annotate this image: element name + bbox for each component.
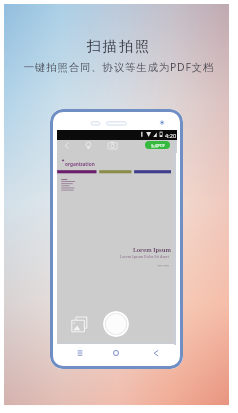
staticText: 一键拍照合同、协议等生成为PDF文档: [0, 60, 238, 74]
button[interactable]: Back: [150, 347, 162, 359]
staticText: 扫描拍照: [0, 37, 238, 55]
button[interactable]: Home: [110, 347, 122, 359]
button[interactable]: Recent apps: [74, 347, 86, 359]
staticText: 生成PDF: [151, 143, 165, 148]
button[interactable]: Back: [60, 139, 73, 152]
staticText: organization: [65, 161, 95, 167]
button[interactable]: Gallery: [71, 316, 88, 333]
staticText: 4:20: [165, 132, 177, 140]
staticText: Lorem Ipsum: [110, 246, 171, 254]
button[interactable]: Shutter: [103, 311, 129, 337]
staticText: Lorem Ipsum Dolor Sit Amet: [110, 254, 169, 259]
button[interactable]: Camera: [106, 139, 119, 152]
button[interactable]: Flash: [82, 139, 95, 152]
button[interactable]: 生成PDF: [145, 141, 170, 149]
